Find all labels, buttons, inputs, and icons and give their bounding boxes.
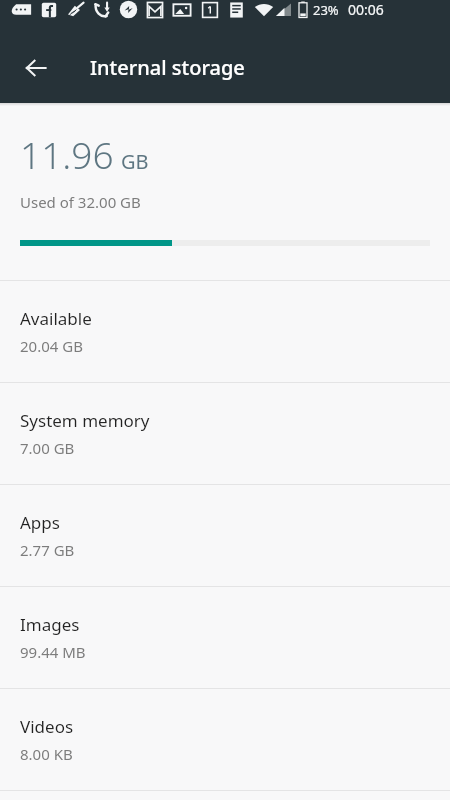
staticText: 7.00 GB	[20, 438, 75, 458]
staticText: 20.04 GB	[20, 336, 83, 356]
button[interactable]: Videos	[0, 689, 450, 790]
staticText: 11.96	[20, 129, 114, 179]
button[interactable]: Navigate up	[12, 44, 60, 92]
button[interactable]: Available	[0, 281, 450, 382]
staticText: Internal storage	[90, 54, 245, 81]
button[interactable]: Images	[0, 587, 450, 688]
staticText: 00:06	[348, 0, 384, 19]
button[interactable]: Apps	[0, 485, 450, 586]
staticText: 8.00 KB	[20, 744, 73, 764]
staticText: 23%	[313, 1, 339, 19]
staticText: Available	[20, 307, 92, 330]
staticText: 99.44 MB	[20, 642, 86, 662]
staticText: 2.77 GB	[20, 540, 75, 560]
staticText: Images	[20, 613, 80, 636]
staticText: Used of 32.00 GB	[20, 192, 141, 212]
button[interactable]: System memory	[0, 383, 450, 484]
staticText: Videos	[20, 715, 74, 738]
staticText: System memory	[20, 409, 150, 432]
staticText: Apps	[20, 511, 60, 534]
staticText: GB	[121, 148, 149, 175]
